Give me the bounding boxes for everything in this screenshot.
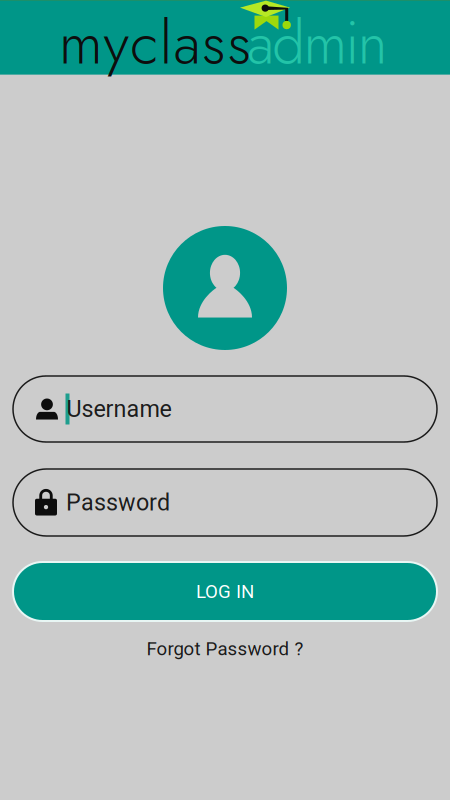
button[interactable]: Username xyxy=(0,376,450,442)
staticText: admin xyxy=(247,1,388,85)
staticText: Forgot Password ? xyxy=(146,638,303,660)
button[interactable]: Forgot Password ? xyxy=(140,635,309,663)
button[interactable]: LOG IN xyxy=(0,562,450,621)
staticText: myclass xyxy=(59,1,252,85)
staticText: LOG IN xyxy=(196,581,254,602)
staticText: Username xyxy=(66,395,171,423)
button[interactable]: Password xyxy=(0,469,450,536)
staticText: Password xyxy=(66,489,170,516)
